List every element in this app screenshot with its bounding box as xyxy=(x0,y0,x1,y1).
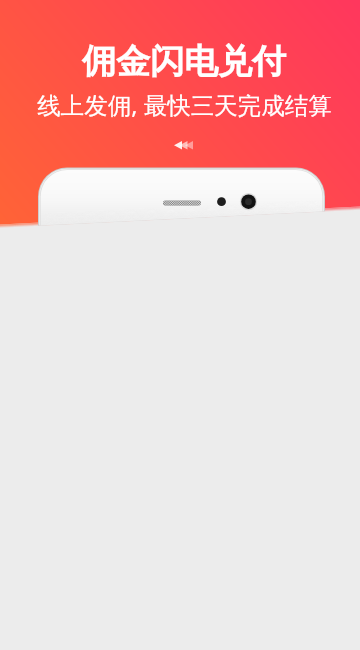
staticText: 佣金闪电兑付 xyxy=(82,40,286,83)
staticText: 线上发佣, 最快三天完成结算 xyxy=(37,89,332,121)
button[interactable]: 佣金闪电兑付 xyxy=(0,0,360,135)
other: 佣金闪电兑付 promotion banner xyxy=(0,0,360,650)
